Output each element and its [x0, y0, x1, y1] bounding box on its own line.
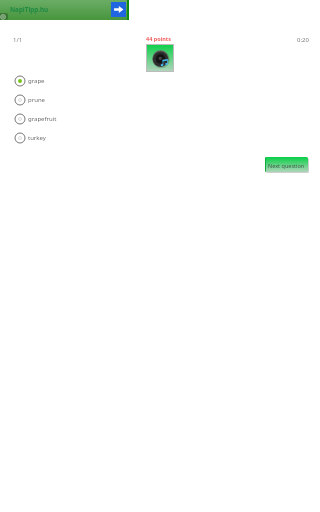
button[interactable]: Site badge — [0, 13, 8, 20]
staticText: grape — [28, 77, 45, 85]
button[interactable]: grapefruit — [14, 113, 134, 125]
staticText: 1/1 — [13, 36, 23, 44]
staticText: grapefruit — [28, 115, 57, 123]
button[interactable]: turkey — [14, 132, 134, 144]
staticText: prune — [28, 96, 45, 104]
staticText: turkey — [28, 134, 46, 142]
staticText: 44 points — [146, 35, 172, 42]
staticText: NapiTipp.hu — [10, 5, 49, 14]
staticText: Next question — [268, 162, 305, 169]
button[interactable]: Play question sound — [147, 45, 173, 71]
button[interactable]: Next question — [265, 157, 308, 172]
button[interactable]: prune — [14, 94, 134, 106]
staticText: 0:20 — [297, 36, 309, 44]
button[interactable]: Forward — [111, 2, 126, 17]
button[interactable]: grape — [14, 75, 134, 87]
